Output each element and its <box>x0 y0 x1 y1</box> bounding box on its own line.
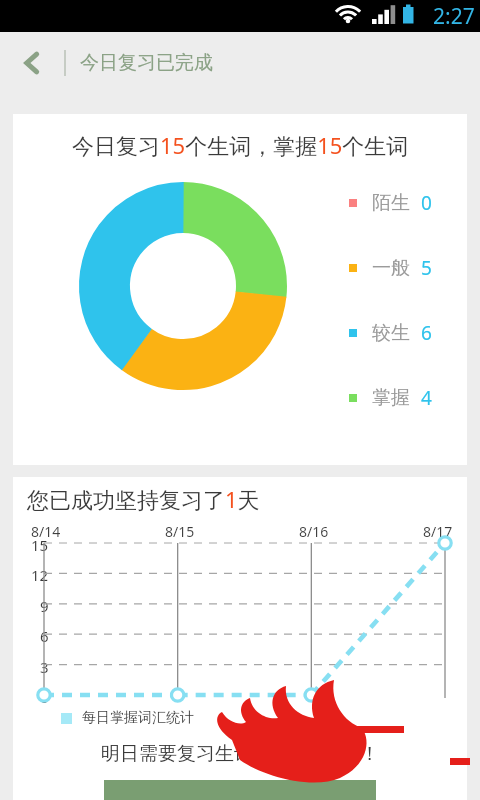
staticText: 5 <box>421 255 432 281</box>
staticText: 您已成功坚持复习了1天 <box>27 484 260 514</box>
staticText: 一般 <box>372 256 410 280</box>
staticText: 8/14 <box>31 522 61 541</box>
staticText: 0 <box>421 190 432 216</box>
staticText: 9 <box>40 596 49 616</box>
button[interactable]: 每日掌握词汇统计 <box>61 709 194 727</box>
staticText: 0 <box>40 687 49 707</box>
staticText: 8/17 <box>423 522 453 541</box>
button[interactable]: Back <box>0 32 64 94</box>
staticText: 每日掌握词汇统计 <box>82 709 194 727</box>
staticText: 12 <box>31 565 49 585</box>
staticText: 2:27 <box>433 2 475 31</box>
button[interactable]: 掌握 <box>349 385 432 411</box>
staticText: 6 <box>421 320 432 346</box>
button[interactable]: 陌生 <box>349 190 432 216</box>
staticText: 15 <box>31 535 49 555</box>
button[interactable]: 较生 <box>349 320 432 346</box>
button[interactable]: 一般 <box>349 255 432 281</box>
button[interactable]: 您已成功坚持复习了1天 <box>13 477 467 800</box>
button[interactable]: 今日复习15个生词，掌握15个生词 <box>13 114 467 465</box>
staticText: 6 <box>40 626 49 646</box>
staticText: 3 <box>40 657 49 677</box>
staticText: 较生 <box>372 321 410 345</box>
staticText: 8/15 <box>165 522 195 541</box>
staticText: 8/16 <box>299 522 329 541</box>
staticText: 今日复习15个生词，掌握15个生词 <box>72 130 409 160</box>
button[interactable]: 今日复习已完成 <box>80 51 213 75</box>
staticText: 4 <box>421 385 432 411</box>
staticText: 掌握 <box>372 386 410 410</box>
staticText: 明日需要复习生词 15 个，加油！ <box>101 740 380 766</box>
staticText: 陌生 <box>372 191 410 215</box>
button[interactable] <box>104 780 376 800</box>
